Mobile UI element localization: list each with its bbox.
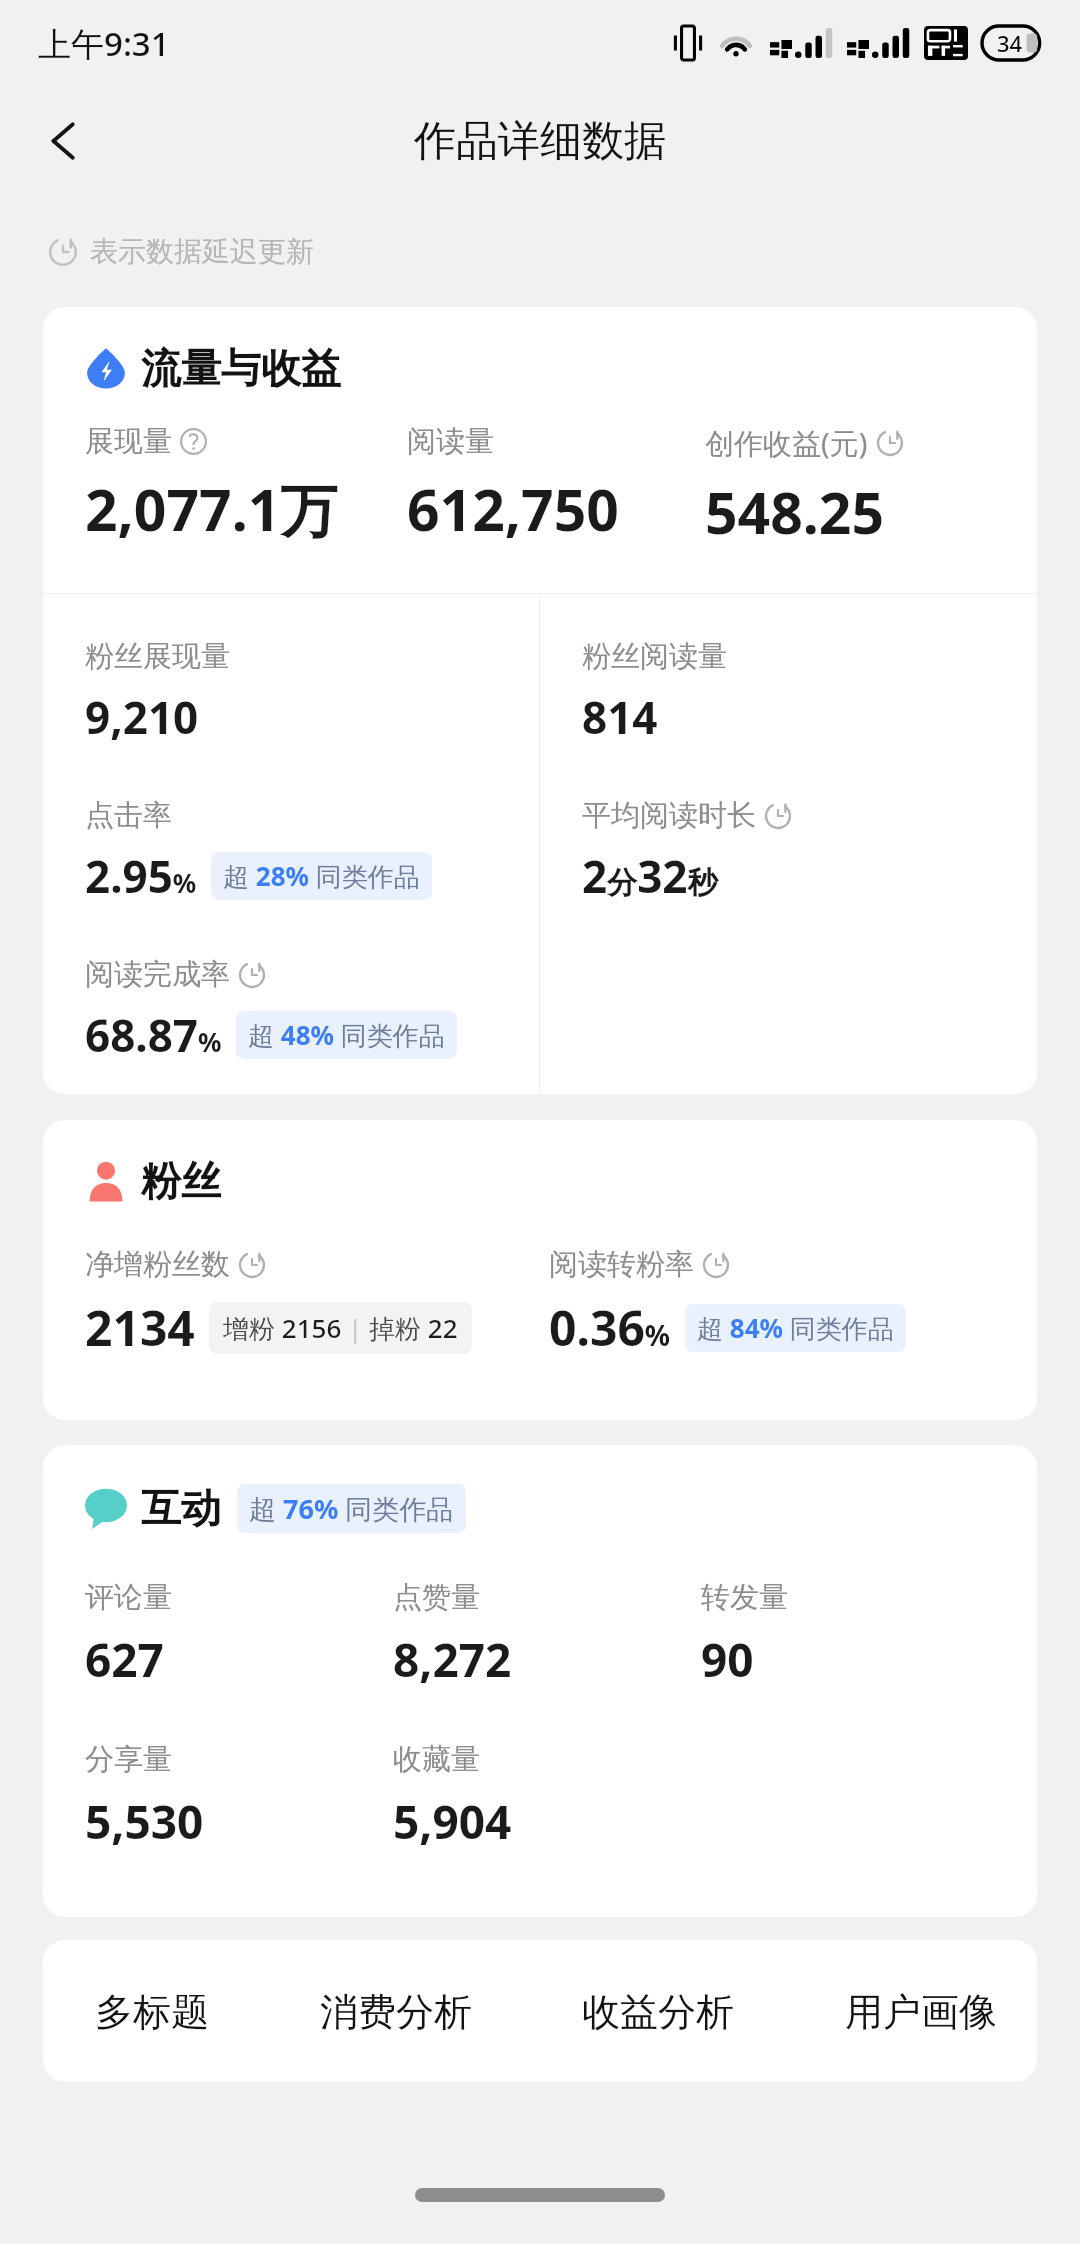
staticText: 阅读完成率 <box>85 956 230 993</box>
staticText: 收益分析 <box>582 1988 734 2036</box>
button[interactable]: 收益分析 <box>576 1982 740 2042</box>
button[interactable]: 点赞量 <box>393 1579 701 1691</box>
button[interactable]: 多标题 <box>89 1982 215 2042</box>
staticText: 2.95% <box>85 846 197 906</box>
staticText: 2134 <box>85 1295 195 1360</box>
staticText: 点击率 <box>85 797 172 834</box>
staticText: 评论量 <box>85 1579 172 1616</box>
button[interactable]: 超 28% 同类作品 <box>223 858 420 894</box>
staticText: 5,530 <box>85 1790 204 1853</box>
staticText: 0.36% <box>549 1295 671 1360</box>
staticText: 表示数据延迟更新 <box>90 234 314 269</box>
staticText: 超 28% 同类作品 <box>223 858 420 894</box>
staticText: 互动 <box>141 1483 221 1533</box>
staticText: 展现量 <box>85 423 172 460</box>
staticText: 多标题 <box>95 1988 209 2036</box>
staticText: 超 76% 同类作品 <box>249 1490 454 1527</box>
staticText: 粉丝阅读量 <box>582 638 727 675</box>
staticText: 5,904 <box>393 1790 512 1853</box>
button[interactable]: 消费分析 <box>314 1982 478 2042</box>
staticText: 627 <box>85 1628 164 1691</box>
staticText: 阅读转粉率 <box>549 1246 694 1283</box>
button[interactable]: 超 76% 同类作品 <box>249 1490 454 1527</box>
staticText: 814 <box>582 687 658 747</box>
staticText: 用户画像 <box>845 1988 997 2036</box>
staticText: 粉丝展现量 <box>85 638 230 675</box>
staticText: 548.25 <box>705 473 885 551</box>
button[interactable]: 互动 <box>85 1483 466 1533</box>
staticText: 创作收益(元) <box>705 423 868 463</box>
staticText: 上午9:31 <box>38 21 170 66</box>
button[interactable]: 流量与收益 <box>85 343 341 393</box>
button[interactable]: Back <box>22 99 106 183</box>
staticText: 分享量 <box>85 1741 172 1778</box>
staticText: 8,272 <box>393 1628 512 1691</box>
staticText: 平均阅读时长 <box>582 797 756 834</box>
button[interactable]: 超 48% 同类作品 <box>248 1017 445 1053</box>
button[interactable]: 转发量 <box>701 1579 1009 1691</box>
staticText: 粉丝 <box>141 1156 221 1206</box>
staticText: 2分32秒 <box>582 846 718 906</box>
staticText: 90 <box>701 1628 754 1691</box>
staticText: 流量与收益 <box>141 343 341 393</box>
staticText: 收藏量 <box>393 1741 480 1778</box>
staticText: 净增粉丝数 <box>85 1246 230 1283</box>
staticText: 68.87% <box>85 1005 222 1065</box>
staticText: 34 <box>997 28 1023 58</box>
button[interactable]: 粉丝 <box>85 1156 221 1206</box>
button[interactable]: 增粉 2156 | 掉粉 22 <box>223 1310 458 1346</box>
button[interactable]: 收藏量 <box>393 1741 701 1853</box>
staticText: 转发量 <box>701 1579 788 1616</box>
staticText: 消费分析 <box>320 1988 472 2036</box>
staticText: 612,750 <box>407 470 619 548</box>
button[interactable]: 分享量 <box>85 1741 393 1853</box>
staticText: 作品详细数据 <box>414 115 666 168</box>
staticText: 阅读量 <box>407 423 494 460</box>
staticText: 9,210 <box>85 687 199 747</box>
staticText: 增粉 2156 | 掉粉 22 <box>223 1310 458 1346</box>
staticText: 2,077.1万 <box>85 470 338 548</box>
staticText: 超 84% 同类作品 <box>697 1310 894 1346</box>
staticText: 超 48% 同类作品 <box>248 1017 445 1053</box>
button[interactable]: 用户画像 <box>839 1982 1003 2042</box>
button[interactable]: 超 84% 同类作品 <box>697 1310 894 1346</box>
staticText: 点赞量 <box>393 1579 480 1616</box>
button[interactable]: 评论量 <box>85 1579 393 1691</box>
